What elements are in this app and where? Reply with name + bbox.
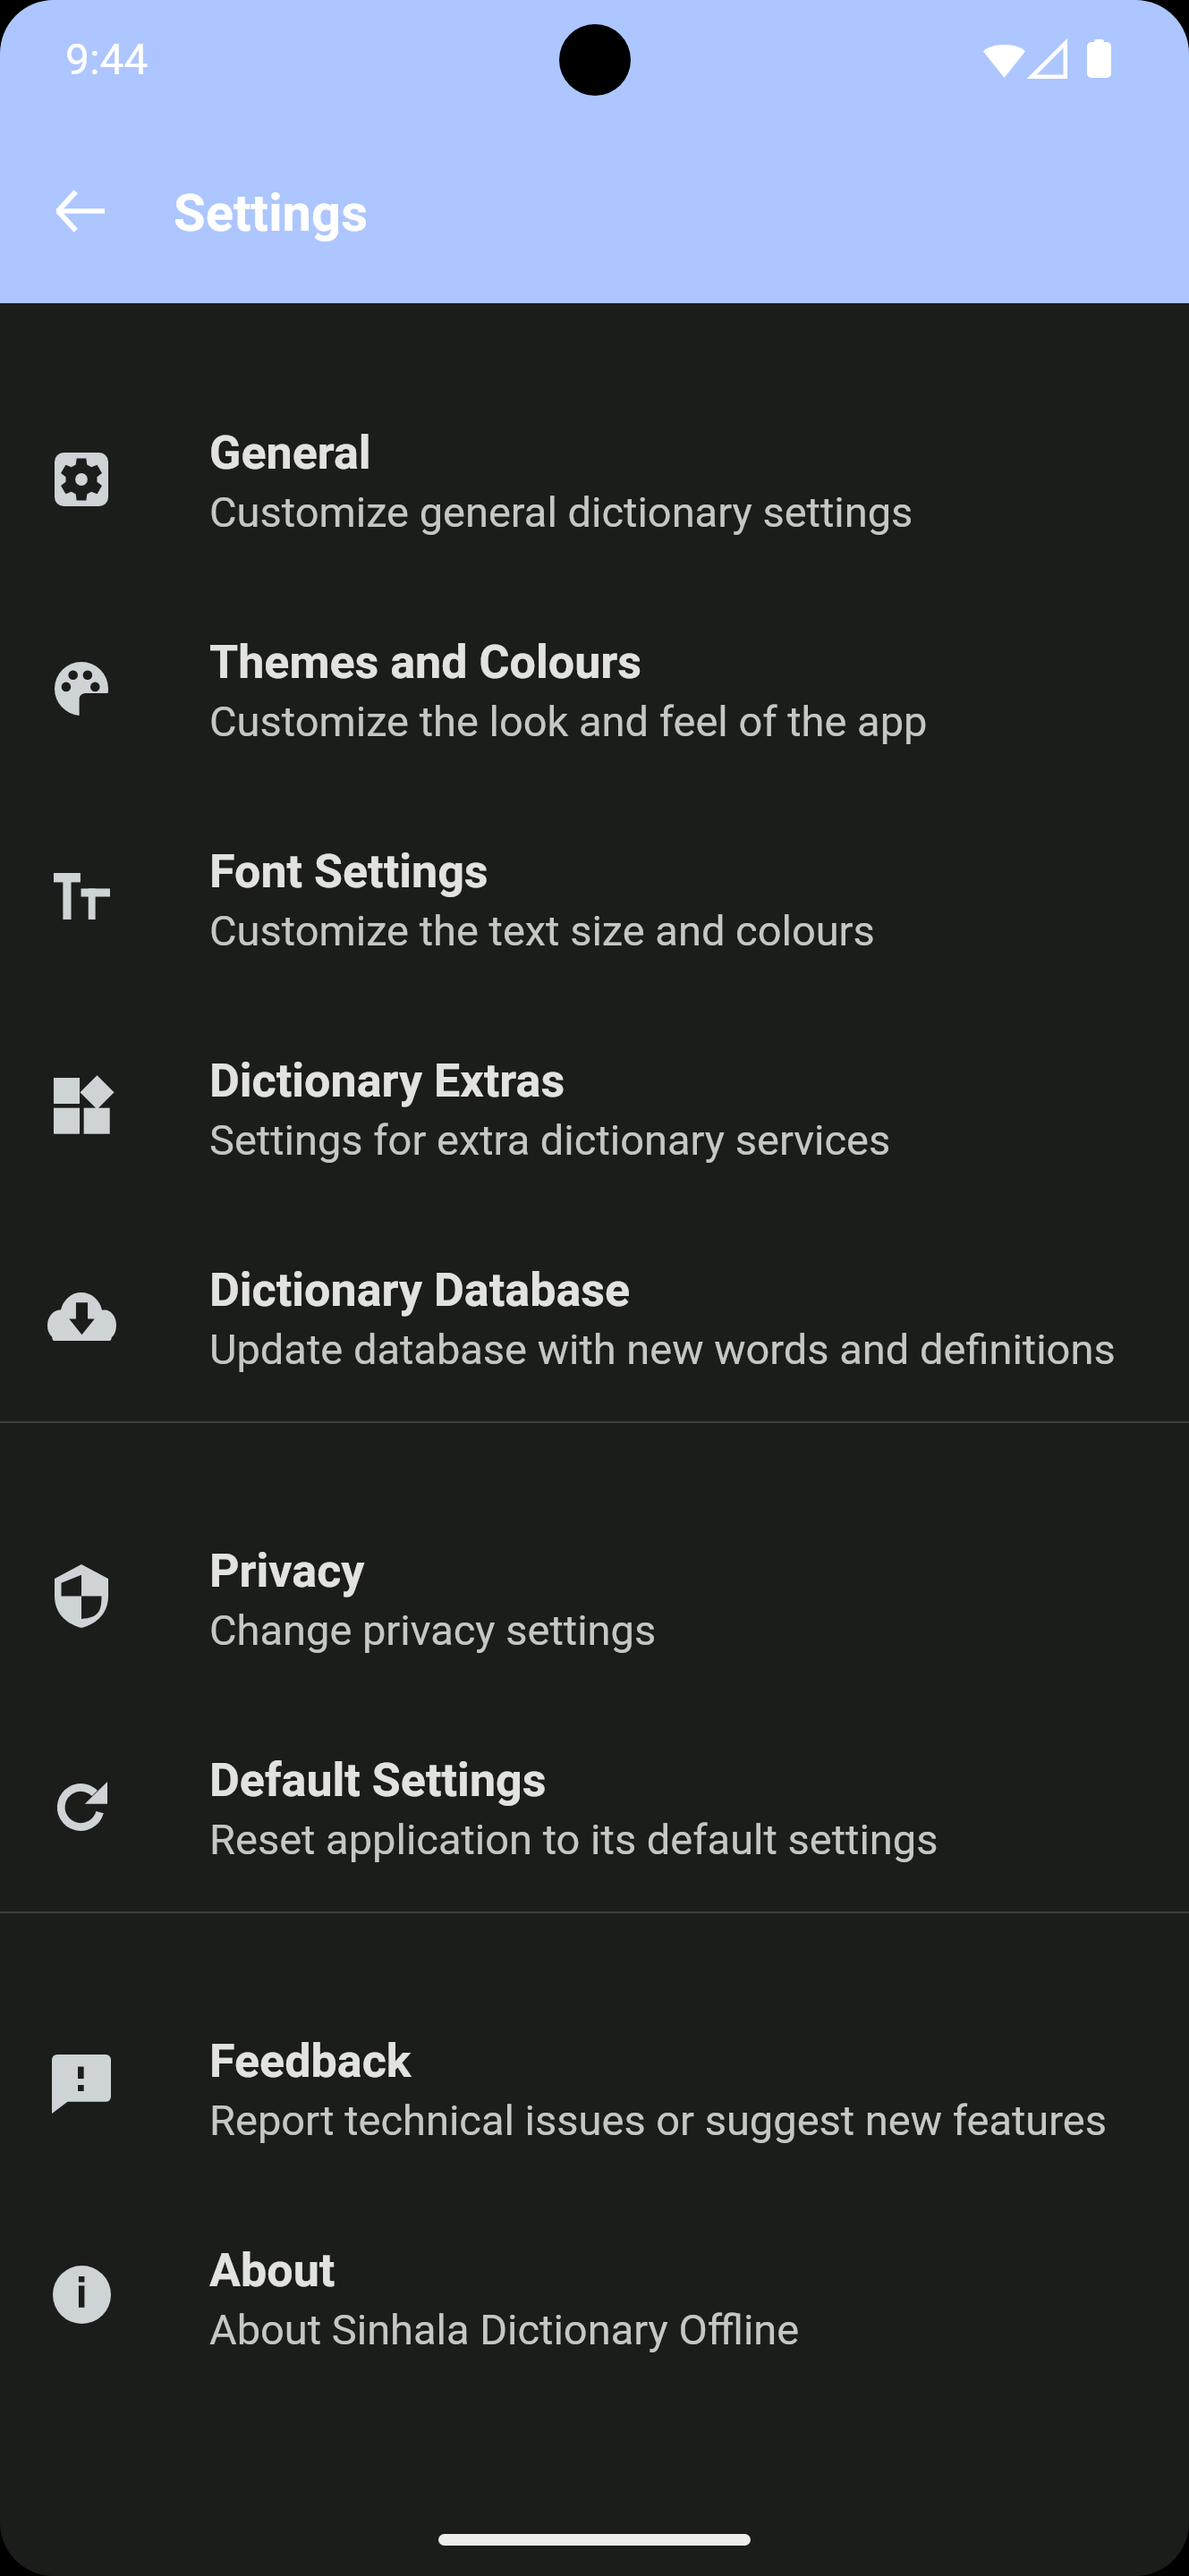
staticText: General xyxy=(209,426,371,480)
button[interactable]: About xyxy=(0,2192,1189,2402)
staticText: Reset application to its default setting… xyxy=(209,1815,938,1864)
staticText: Privacy xyxy=(209,1544,365,1598)
staticText: Feedback xyxy=(209,2034,412,2089)
staticText: Dictionary Extras xyxy=(209,1054,565,1108)
staticText: Customize the look and feel of the app xyxy=(209,697,928,746)
staticText: Report technical issues or suggest new f… xyxy=(209,2096,1107,2145)
button[interactable]: General xyxy=(0,375,1189,584)
button[interactable]: Privacy xyxy=(0,1493,1189,1702)
staticText: Font Settings xyxy=(209,844,488,899)
button[interactable]: Dictionary Database xyxy=(0,1212,1189,1421)
button[interactable]: Font Settings xyxy=(0,793,1189,1003)
staticText: Default Settings xyxy=(209,1753,547,1808)
staticText: Customize the text size and colours xyxy=(209,906,875,955)
button[interactable]: Feedback xyxy=(0,1983,1189,2192)
staticText: Themes and Colours xyxy=(209,635,642,690)
staticText: Dictionary Database xyxy=(209,1263,631,1318)
staticText: 9:44 xyxy=(65,34,149,84)
staticText: Change privacy settings xyxy=(209,1606,657,1655)
staticText: Settings xyxy=(174,182,369,243)
button[interactable]: Themes and Colours xyxy=(0,584,1189,793)
staticText: Update database with new words and defin… xyxy=(209,1325,1116,1374)
staticText: Settings for extra dictionary services xyxy=(209,1115,891,1165)
staticText: Customize general dictionary settings xyxy=(209,487,913,537)
staticText: About xyxy=(209,2243,335,2298)
button[interactable]: Back xyxy=(38,169,122,253)
button[interactable]: Default Settings xyxy=(0,1702,1189,1911)
staticText: About Sinhala Dictionary Offline xyxy=(209,2305,800,2354)
button[interactable]: Dictionary Extras xyxy=(0,1003,1189,1212)
